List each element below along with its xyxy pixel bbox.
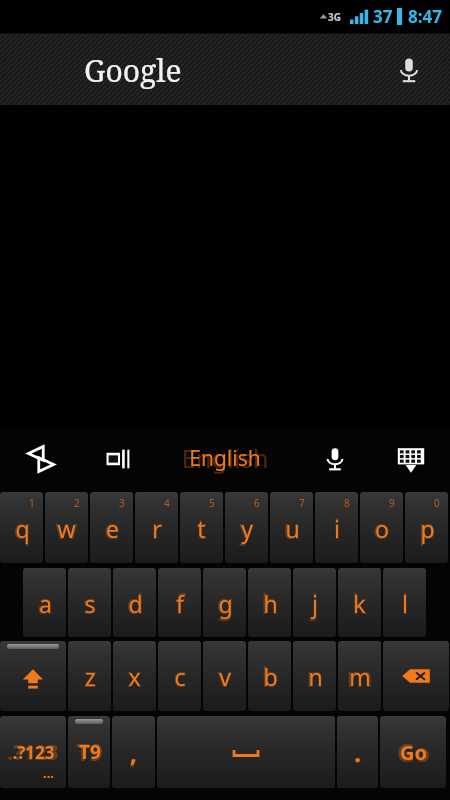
button[interactable]: u	[270, 492, 313, 563]
staticText: 3	[119, 496, 125, 510]
button[interactable]: b	[248, 641, 291, 711]
staticText: 5	[209, 496, 215, 510]
staticText: k	[352, 584, 367, 622]
staticText: s	[84, 588, 96, 619]
staticText: z	[83, 657, 97, 695]
button[interactable]: Space	[157, 716, 335, 788]
button[interactable]: Backspace	[383, 641, 449, 711]
staticText: b	[261, 657, 279, 695]
staticText: g	[218, 588, 233, 619]
button[interactable]: y	[225, 492, 268, 563]
staticText: 6	[254, 496, 260, 510]
staticText: ...	[43, 764, 54, 782]
staticText: r	[152, 513, 162, 544]
staticText: 4	[164, 496, 170, 510]
staticText: f	[175, 584, 185, 622]
button[interactable]: j	[293, 568, 336, 637]
button[interactable]: x	[113, 641, 156, 711]
button[interactable]: .?123	[0, 716, 66, 788]
staticText: m	[349, 661, 371, 692]
button[interactable]: z	[68, 641, 111, 711]
button[interactable]: g	[203, 568, 246, 637]
staticText: Google	[84, 50, 182, 91]
staticText: .?123	[12, 741, 55, 764]
staticText: c	[174, 661, 186, 692]
button[interactable]: m	[338, 641, 381, 711]
staticText: j	[311, 584, 319, 622]
button[interactable]: v	[203, 641, 246, 711]
button[interactable]: c	[158, 641, 201, 711]
button[interactable]: Input method settings	[18, 436, 64, 482]
staticText: z	[85, 661, 96, 692]
button[interactable]: e	[90, 492, 133, 563]
staticText: p	[420, 513, 435, 544]
button[interactable]: r	[135, 492, 178, 563]
staticText: 37	[373, 5, 393, 28]
staticText: q	[13, 509, 31, 547]
staticText: l	[402, 588, 408, 619]
staticText: ,	[130, 736, 137, 769]
staticText: h	[261, 584, 279, 622]
button[interactable]: s	[68, 568, 111, 637]
button[interactable]: p	[405, 492, 448, 563]
button[interactable]: t	[180, 492, 223, 563]
button[interactable]: o	[360, 492, 403, 563]
staticText: i	[334, 513, 340, 544]
staticText: .	[353, 732, 362, 772]
button[interactable]: a	[23, 568, 66, 637]
staticText: 8:47	[408, 5, 442, 28]
staticText: f	[176, 588, 184, 619]
staticText: c	[173, 657, 187, 695]
staticText: m	[346, 657, 373, 695]
button[interactable]: English	[181, 441, 269, 476]
staticText: v	[219, 661, 231, 692]
button[interactable]: d	[113, 568, 156, 637]
staticText: d	[126, 584, 144, 622]
staticText: t	[197, 513, 206, 544]
button[interactable]: q	[0, 492, 43, 563]
staticText: e	[106, 513, 119, 544]
staticText: r	[151, 509, 163, 547]
staticText: English	[189, 444, 261, 473]
button[interactable]: i	[315, 492, 358, 563]
staticText: q	[15, 513, 30, 544]
button[interactable]: Voice search	[392, 53, 426, 87]
staticText: p	[418, 509, 436, 547]
staticText: .?123	[7, 738, 59, 766]
staticText: T9	[79, 739, 101, 765]
button[interactable]: T9	[68, 716, 110, 788]
button[interactable]: k	[338, 568, 381, 637]
button[interactable]: Google	[0, 32, 450, 107]
button[interactable]: .	[337, 716, 378, 788]
button[interactable]: Shift	[0, 641, 66, 711]
staticText: a	[37, 584, 53, 622]
staticText: 8	[344, 496, 350, 510]
staticText: j	[312, 588, 318, 619]
button[interactable]: ,	[112, 716, 155, 788]
button[interactable]: n	[293, 641, 336, 711]
staticText: n	[306, 657, 324, 695]
button[interactable]: l	[383, 568, 426, 637]
staticText: v	[217, 657, 232, 695]
staticText: ,	[129, 732, 138, 772]
button[interactable]: Go	[380, 716, 446, 788]
staticText: Go	[400, 739, 427, 766]
staticText: o	[373, 509, 390, 547]
button[interactable]: h	[248, 568, 291, 637]
staticText: b	[263, 661, 278, 692]
button[interactable]: f	[158, 568, 201, 637]
staticText: e	[104, 509, 120, 547]
staticText: t	[196, 509, 207, 547]
button[interactable]: Hide keyboard	[388, 436, 434, 482]
button[interactable]: w	[45, 492, 88, 563]
staticText: 0	[434, 496, 440, 510]
staticText: .	[354, 736, 361, 769]
button[interactable]: Keyboard layout	[96, 436, 142, 482]
staticText: h	[263, 588, 278, 619]
staticText: u	[283, 509, 301, 547]
staticText: w	[57, 513, 76, 544]
button[interactable]: Voice input	[312, 436, 358, 482]
staticText: o	[375, 513, 389, 544]
staticText: y	[241, 513, 253, 544]
staticText: 9	[389, 496, 395, 510]
